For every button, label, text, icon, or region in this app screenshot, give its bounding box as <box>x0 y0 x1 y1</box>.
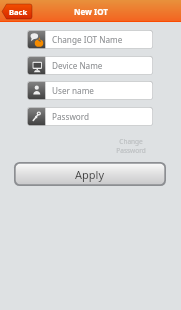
staticText: Apply <box>75 167 105 182</box>
button[interactable]: Password <box>27 107 153 126</box>
button[interactable]: Device Name <box>27 56 153 75</box>
staticText: Change Password <box>116 137 146 155</box>
button[interactable]: User name <box>27 81 153 100</box>
button[interactable]: Change IOT Name <box>27 30 153 49</box>
staticText: Password <box>52 111 90 122</box>
staticText: User name <box>52 85 94 96</box>
staticText: New IOT <box>74 6 108 17</box>
button[interactable]: Apply <box>14 162 166 186</box>
staticText: Device Name <box>52 60 103 71</box>
staticText: Back <box>9 7 28 17</box>
button[interactable]: Change Password <box>110 137 151 157</box>
button[interactable]: Back <box>2 4 32 19</box>
staticText: Change IOT Name <box>52 34 123 45</box>
